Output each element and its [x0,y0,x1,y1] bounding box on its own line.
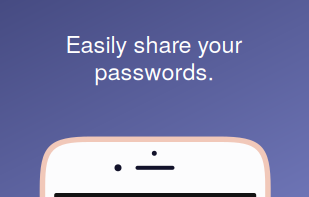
staticText: passwords. [94,53,213,87]
staticText: Easily share your [65,26,242,59]
button[interactable]: Easily share your passwords. [0,0,309,197]
